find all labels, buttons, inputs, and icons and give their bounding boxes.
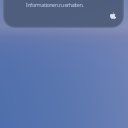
button[interactable]: Informationen zu erhalten. — [4, 0, 123, 27]
staticText: Informationen zu erhalten. — [26, 1, 83, 8]
